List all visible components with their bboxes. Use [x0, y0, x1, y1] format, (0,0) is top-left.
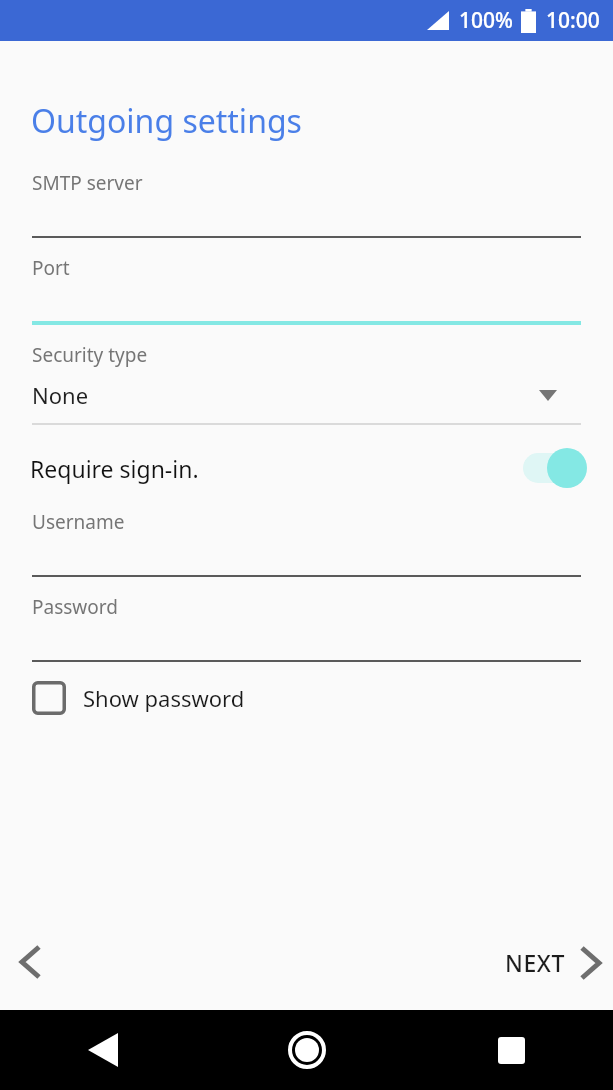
button[interactable]: SMTP server	[32, 170, 581, 238]
button[interactable]: Security type	[32, 342, 581, 425]
button[interactable]: Password	[32, 594, 581, 662]
staticText: Port	[32, 255, 70, 281]
staticText: Show password	[83, 683, 245, 713]
staticText: Require sign-in.	[30, 453, 199, 484]
staticText: NEXT	[505, 947, 566, 978]
button[interactable]: Port	[32, 255, 581, 325]
button[interactable]: Home	[205, 1010, 409, 1090]
staticText: 100%	[459, 6, 513, 35]
button[interactable]: Require sign-in.	[0, 437, 613, 499]
staticText: SMTP server	[32, 170, 143, 196]
staticText: 10:00	[546, 6, 600, 35]
button[interactable]: Username	[32, 509, 581, 577]
button[interactable]: Previous	[6, 938, 54, 986]
staticText: None	[32, 380, 89, 410]
button[interactable]: Recent apps	[409, 1010, 613, 1090]
staticText: Security type	[32, 342, 148, 368]
button[interactable]: NEXT	[489, 939, 613, 986]
button[interactable]: Back	[0, 1010, 205, 1090]
staticText: Password	[32, 594, 118, 620]
button[interactable]: Show password	[32, 681, 245, 715]
staticText: Outgoing settings	[31, 99, 302, 143]
staticText: Username	[32, 509, 125, 535]
